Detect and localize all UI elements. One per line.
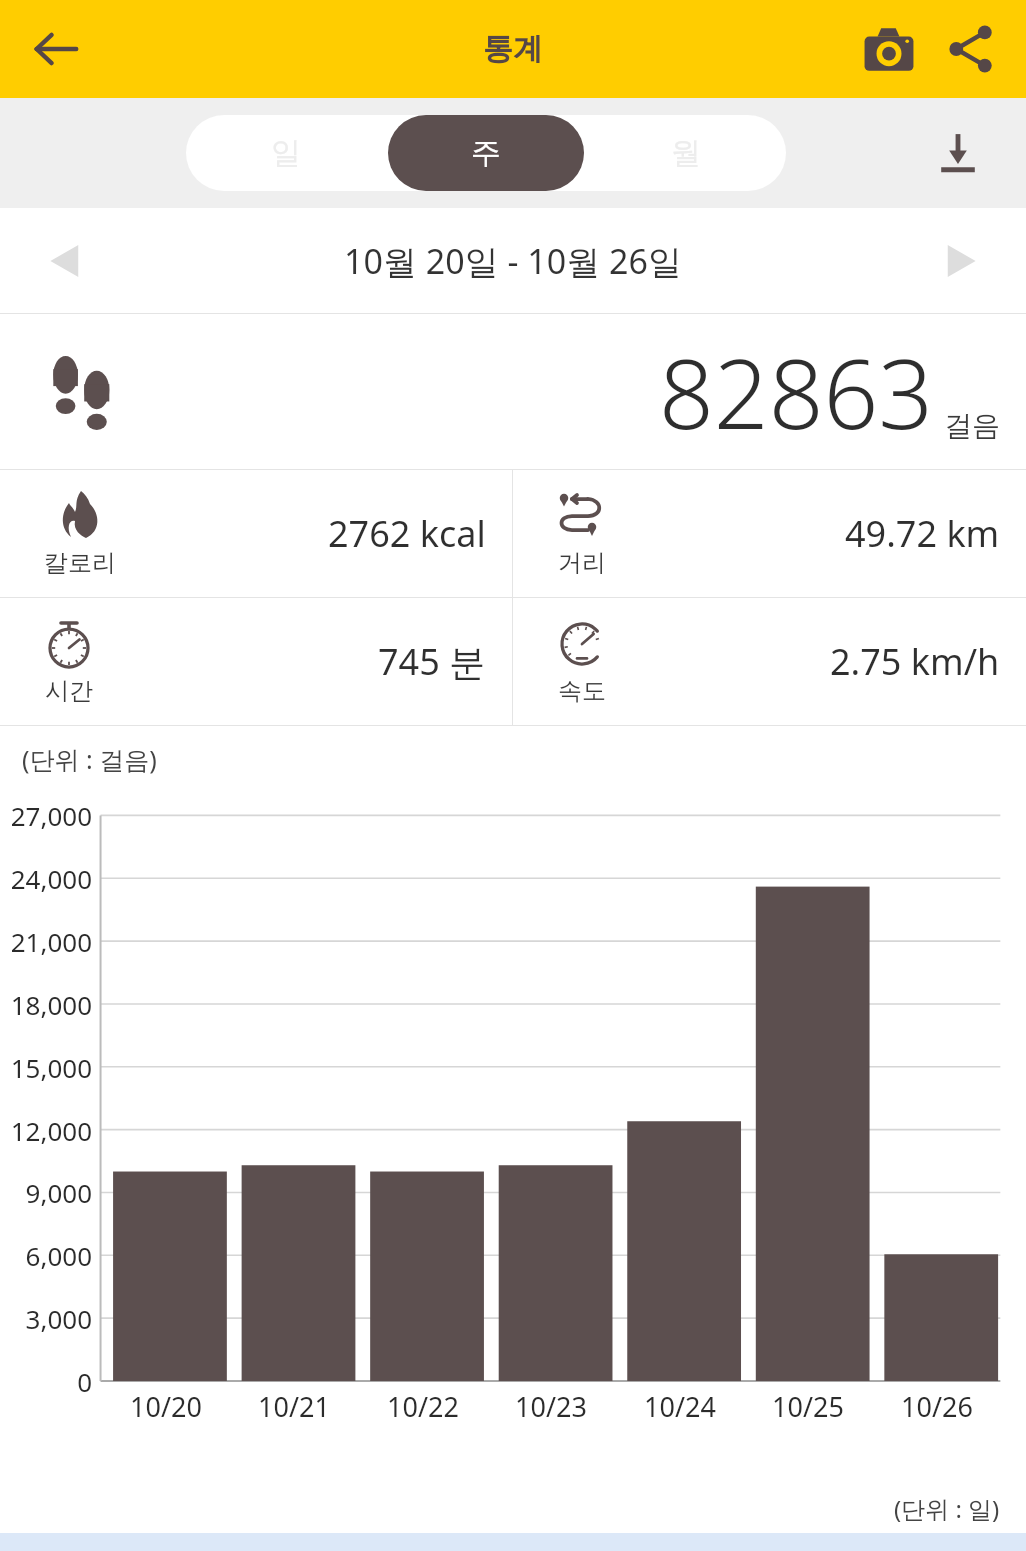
button[interactable]: 시간: [0, 598, 512, 725]
button[interactable]: 10/21: [229, 1388, 358, 1425]
staticText: 21,000: [0, 924, 92, 959]
staticText: 12,000: [0, 1113, 92, 1148]
button[interactable]: 월: [586, 115, 786, 191]
button[interactable]: 칼로리: [0, 470, 512, 597]
staticText: 통계: [483, 30, 543, 68]
button[interactable]: 10/20: [101, 1388, 230, 1425]
button[interactable]: Share: [930, 8, 1012, 90]
staticText: 월: [671, 134, 701, 172]
staticText: 걸음: [944, 408, 1000, 443]
button[interactable]: Back: [18, 11, 94, 87]
staticText: 9,000: [0, 1175, 92, 1210]
staticText: 일: [271, 134, 301, 172]
staticText: (단위 : 걸음): [22, 742, 157, 776]
staticText: 24,000: [0, 861, 92, 896]
button[interactable]: Download: [920, 115, 996, 191]
button[interactable]: 10/24: [615, 1388, 744, 1425]
staticText: 18,000: [0, 987, 92, 1022]
button[interactable]: Next week: [922, 221, 1002, 301]
staticText: 거리: [558, 548, 606, 578]
button[interactable]: Capture screenshot: [848, 8, 930, 90]
staticText: (단위 : 일): [894, 1492, 1000, 1525]
button[interactable]: 10/23: [486, 1388, 615, 1425]
button[interactable]: 거리: [513, 470, 1026, 597]
staticText: 27,000: [0, 798, 92, 833]
staticText: 82863: [659, 326, 934, 457]
staticText: 3,000: [0, 1301, 92, 1336]
staticText: 10월 20일 - 10월 26일: [344, 238, 682, 284]
button[interactable]: 속도: [513, 598, 1026, 725]
staticText: 시간: [45, 676, 93, 706]
staticText: 2.75 km/h: [830, 637, 1000, 686]
staticText: 10/21: [258, 1388, 330, 1425]
staticText: 칼로리: [44, 548, 116, 578]
staticText: 49.72 km: [845, 509, 1000, 558]
staticText: 0: [0, 1364, 92, 1399]
staticText: 745 분: [378, 637, 486, 686]
button[interactable]: 주: [388, 115, 584, 191]
staticText: 2762 kcal: [328, 509, 486, 558]
staticText: 10/22: [387, 1388, 459, 1425]
button[interactable]: 10/22: [358, 1388, 487, 1425]
staticText: 10/25: [772, 1388, 844, 1425]
staticText: 속도: [558, 676, 606, 706]
staticText: 10/26: [901, 1388, 973, 1425]
staticText: 주: [471, 134, 501, 172]
staticText: 15,000: [0, 1050, 92, 1085]
staticText: 10/20: [130, 1388, 202, 1425]
staticText: 10/24: [644, 1388, 716, 1425]
button[interactable]: 82863: [0, 314, 1026, 469]
button[interactable]: Previous week: [24, 221, 104, 301]
button[interactable]: 10/26: [872, 1388, 1001, 1425]
staticText: 10/23: [515, 1388, 587, 1425]
button[interactable]: 10/25: [743, 1388, 872, 1425]
button[interactable]: 일: [186, 115, 386, 191]
staticText: 6,000: [0, 1238, 92, 1273]
